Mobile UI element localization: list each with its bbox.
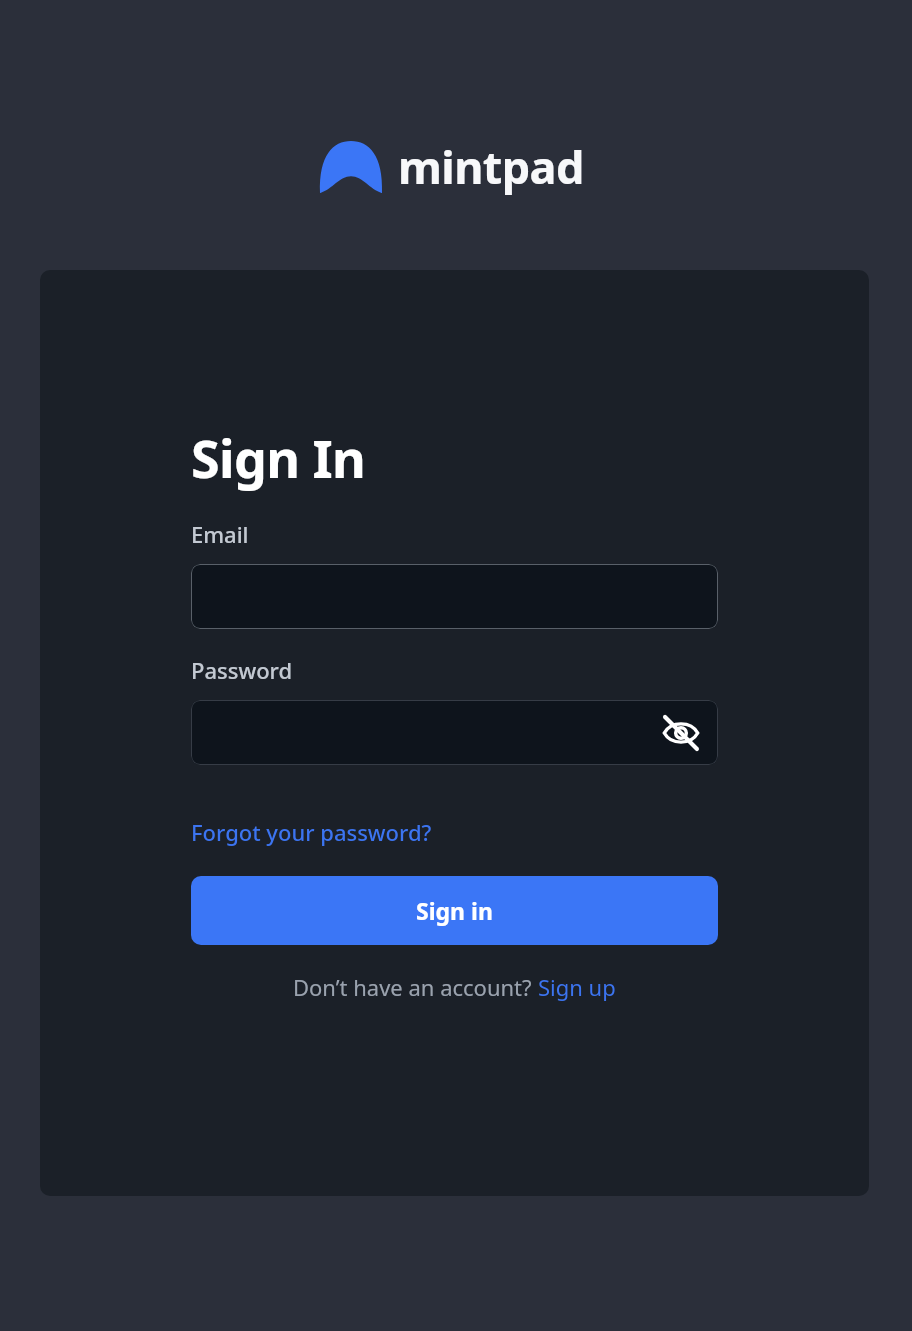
button[interactable]: Email input field (191, 564, 718, 629)
staticText: mintpad (398, 136, 584, 197)
staticText: Sign in (416, 895, 493, 926)
button[interactable]: Sign in (191, 876, 718, 945)
staticText: Don’t have an account? (293, 972, 538, 1002)
button[interactable]: Show password (656, 708, 706, 758)
staticText: Sign up (538, 972, 616, 1002)
staticText: Password (191, 655, 293, 685)
button[interactable]: Password input field (191, 700, 718, 765)
staticText: Email (191, 519, 249, 549)
button[interactable]: Mintpad logo (320, 136, 584, 197)
other: Mintpad logo (320, 141, 382, 193)
button[interactable]: Forgot your password? (191, 817, 432, 847)
staticText: Forgot your password? (191, 817, 432, 847)
staticText: Sign In (191, 422, 366, 493)
button[interactable]: Sign up (538, 972, 616, 1002)
